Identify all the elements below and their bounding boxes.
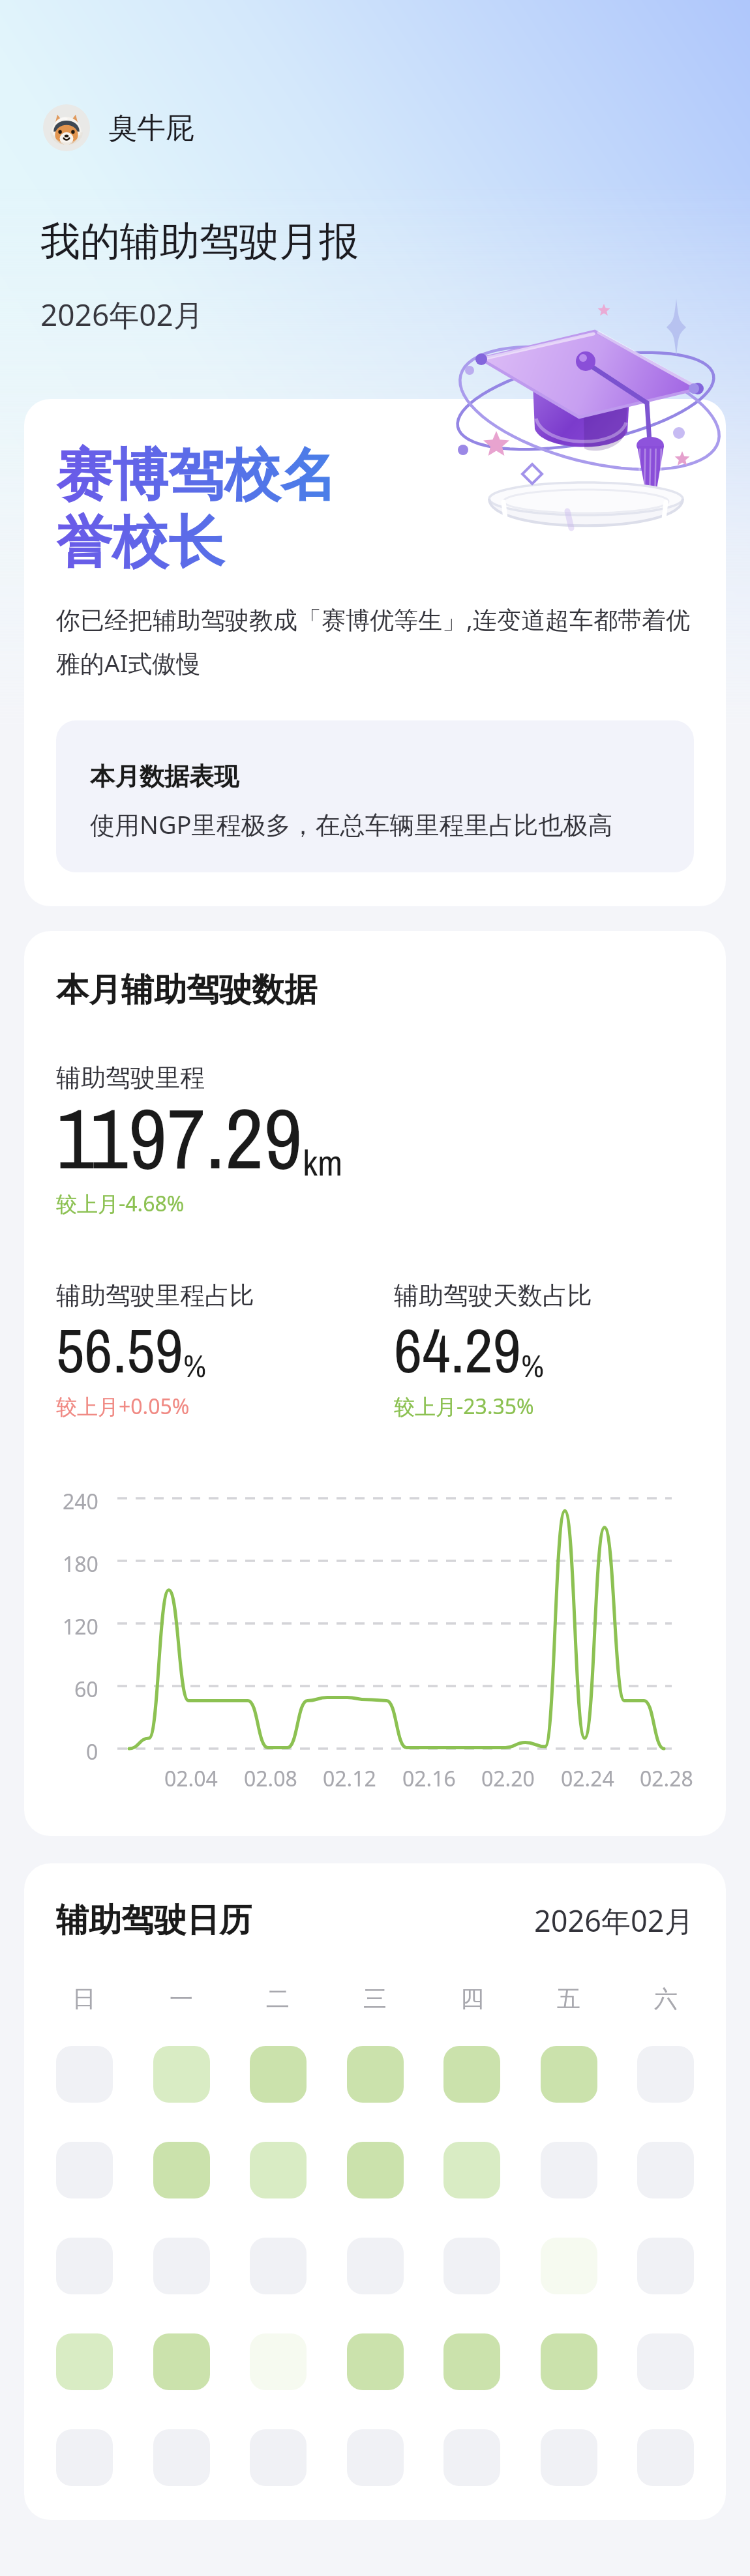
staticText: 02.04	[164, 1764, 218, 1793]
other: Profile avatar	[43, 104, 90, 151]
staticText: 56.59	[56, 1309, 183, 1392]
staticText: 你已经把辅助驾驶教成「赛博优等生」,连变道超车都带着优雅的AI式傲慢	[56, 602, 694, 679]
staticText: 较上月-23.35%	[394, 1392, 534, 1421]
other: Graduation cap illustration	[430, 293, 750, 567]
staticText: 02.20	[481, 1764, 535, 1793]
staticText: 赛博驾校名 誉校长	[56, 440, 337, 578]
staticText: 较上月+0.05%	[56, 1392, 190, 1421]
staticText: 日	[72, 1984, 96, 2013]
staticText: 64.29	[394, 1309, 521, 1392]
staticText: 02.28	[640, 1764, 693, 1793]
staticText: 五	[557, 1984, 580, 2013]
staticText: 120	[63, 1612, 98, 1641]
staticText: %	[183, 1344, 206, 1387]
staticText: 臭牛屁	[108, 110, 194, 146]
staticText: 二	[266, 1984, 290, 2013]
staticText: 60	[74, 1675, 98, 1704]
staticText: 180	[63, 1550, 98, 1578]
staticText: %	[521, 1344, 544, 1387]
staticText: 240	[63, 1487, 98, 1516]
staticText: 02.24	[561, 1764, 614, 1793]
staticText: 辅助驾驶天数占比	[394, 1280, 592, 1311]
staticText: 辅助驾驶日历	[56, 1900, 252, 1941]
staticText: 使用NGP里程极多，在总车辆里程里占比也极高	[90, 807, 613, 841]
staticText: 02.12	[323, 1764, 376, 1793]
staticText: 2026年02月	[534, 1901, 694, 1940]
staticText: 较上月-4.68%	[56, 1189, 185, 1218]
staticText: 六	[654, 1984, 678, 2013]
staticText: km	[303, 1138, 343, 1187]
staticText: 辅助驾驶里程	[56, 1062, 205, 1093]
staticText: 一	[170, 1984, 193, 2013]
staticText: 本月辅助驾驶数据	[56, 970, 317, 1011]
staticText: 三	[363, 1984, 387, 2013]
staticText: 02.08	[244, 1764, 297, 1793]
staticText: 1197.29	[56, 1080, 303, 1194]
staticText: 本月数据表现	[90, 761, 239, 792]
staticText: 四	[460, 1984, 484, 2013]
staticText: 0	[86, 1738, 98, 1766]
staticText: 2026年02月	[40, 294, 203, 335]
staticText: 02.16	[402, 1764, 456, 1793]
staticText: 我的辅助驾驶月报	[40, 216, 359, 267]
staticText: 辅助驾驶里程占比	[56, 1280, 254, 1311]
